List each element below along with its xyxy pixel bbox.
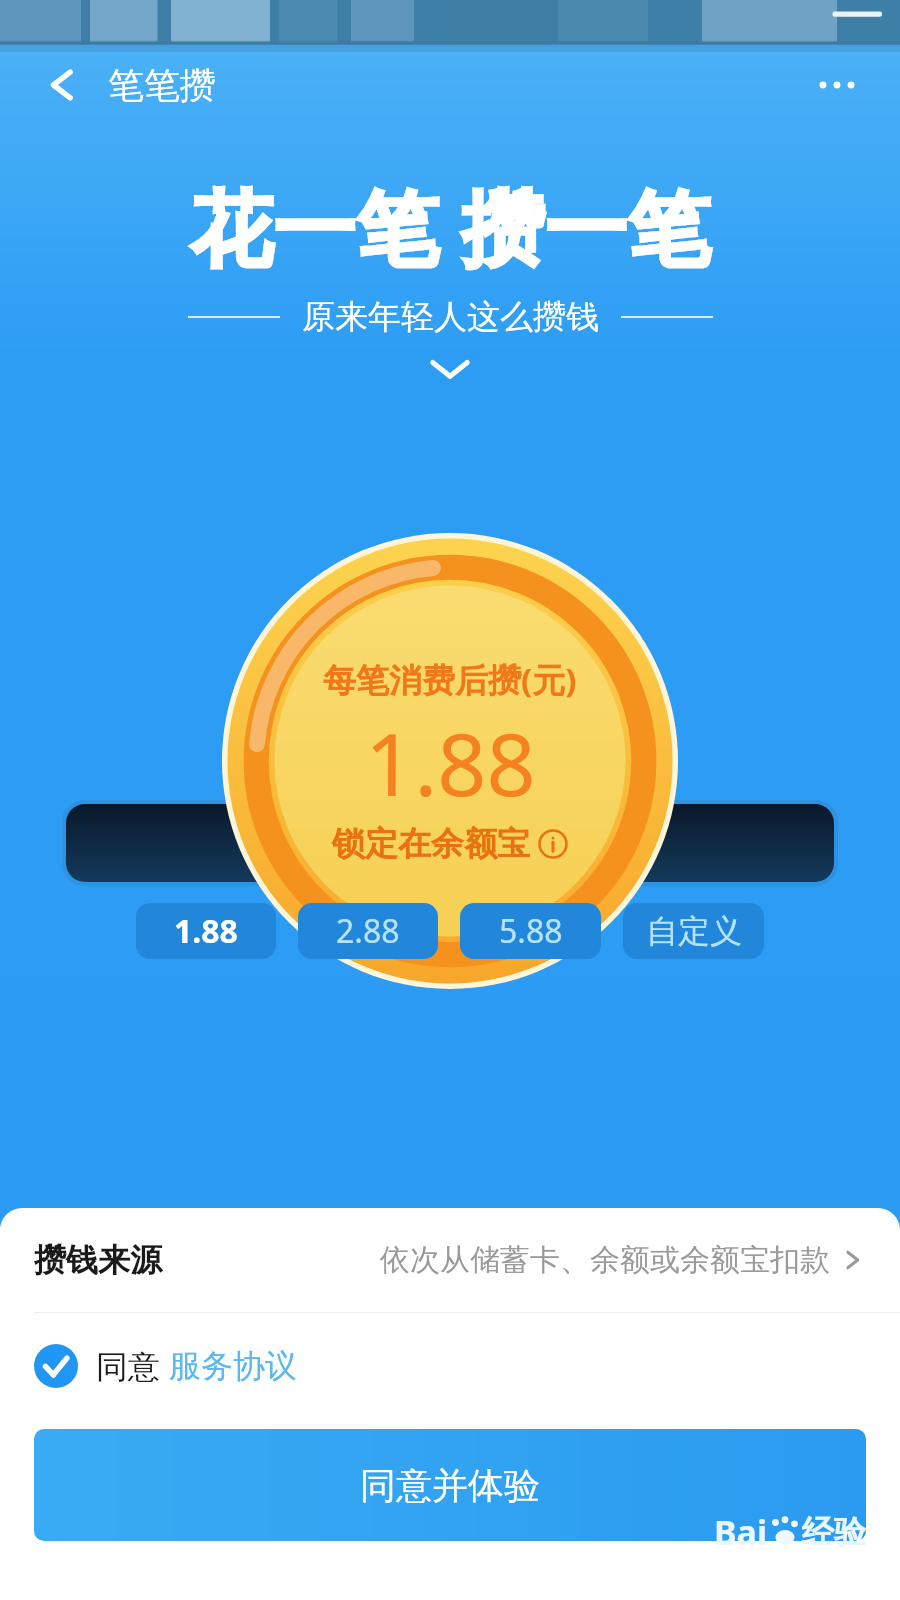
button[interactable]: 锁定在余额宝: [332, 823, 568, 865]
staticText: 同意并体验: [360, 1463, 540, 1508]
staticText: 经验: [802, 1512, 866, 1552]
staticText: 每笔消费后攒(元): [323, 657, 577, 702]
button[interactable]: 5.88: [460, 903, 601, 959]
button[interactable]: 2.88: [298, 903, 438, 959]
button[interactable]: 自定义: [623, 903, 764, 959]
staticText: Bai: [714, 1509, 768, 1555]
button[interactable]: 1.88: [136, 903, 276, 959]
staticText: 5.88: [499, 909, 563, 953]
staticText: 服务协议: [169, 1346, 297, 1386]
staticText: 1.88: [365, 704, 536, 821]
button[interactable]: 同意: [0, 1313, 900, 1419]
staticText: 2.88: [336, 909, 400, 953]
staticText: 攒钱来源: [34, 1240, 162, 1280]
staticText: 自定义: [646, 911, 742, 951]
button[interactable]: 同意并体验: [34, 1429, 866, 1541]
staticText: 1.88: [174, 909, 238, 953]
other: Info: [538, 829, 568, 859]
staticText: 原来年轻人这么攒钱: [302, 296, 599, 338]
button[interactable]: 攒钱来源: [0, 1208, 900, 1312]
staticText: 同意: [96, 1344, 169, 1388]
staticText: 依次从储蓄卡、余额或余额宝扣款: [380, 1241, 830, 1279]
staticText: 笔笔攒: [108, 63, 216, 108]
staticText: 锁定在余额宝: [332, 823, 530, 865]
staticText: 花一笔 攒一笔: [190, 170, 711, 282]
button[interactable]: More options: [800, 48, 874, 122]
button[interactable]: Back: [26, 53, 90, 117]
